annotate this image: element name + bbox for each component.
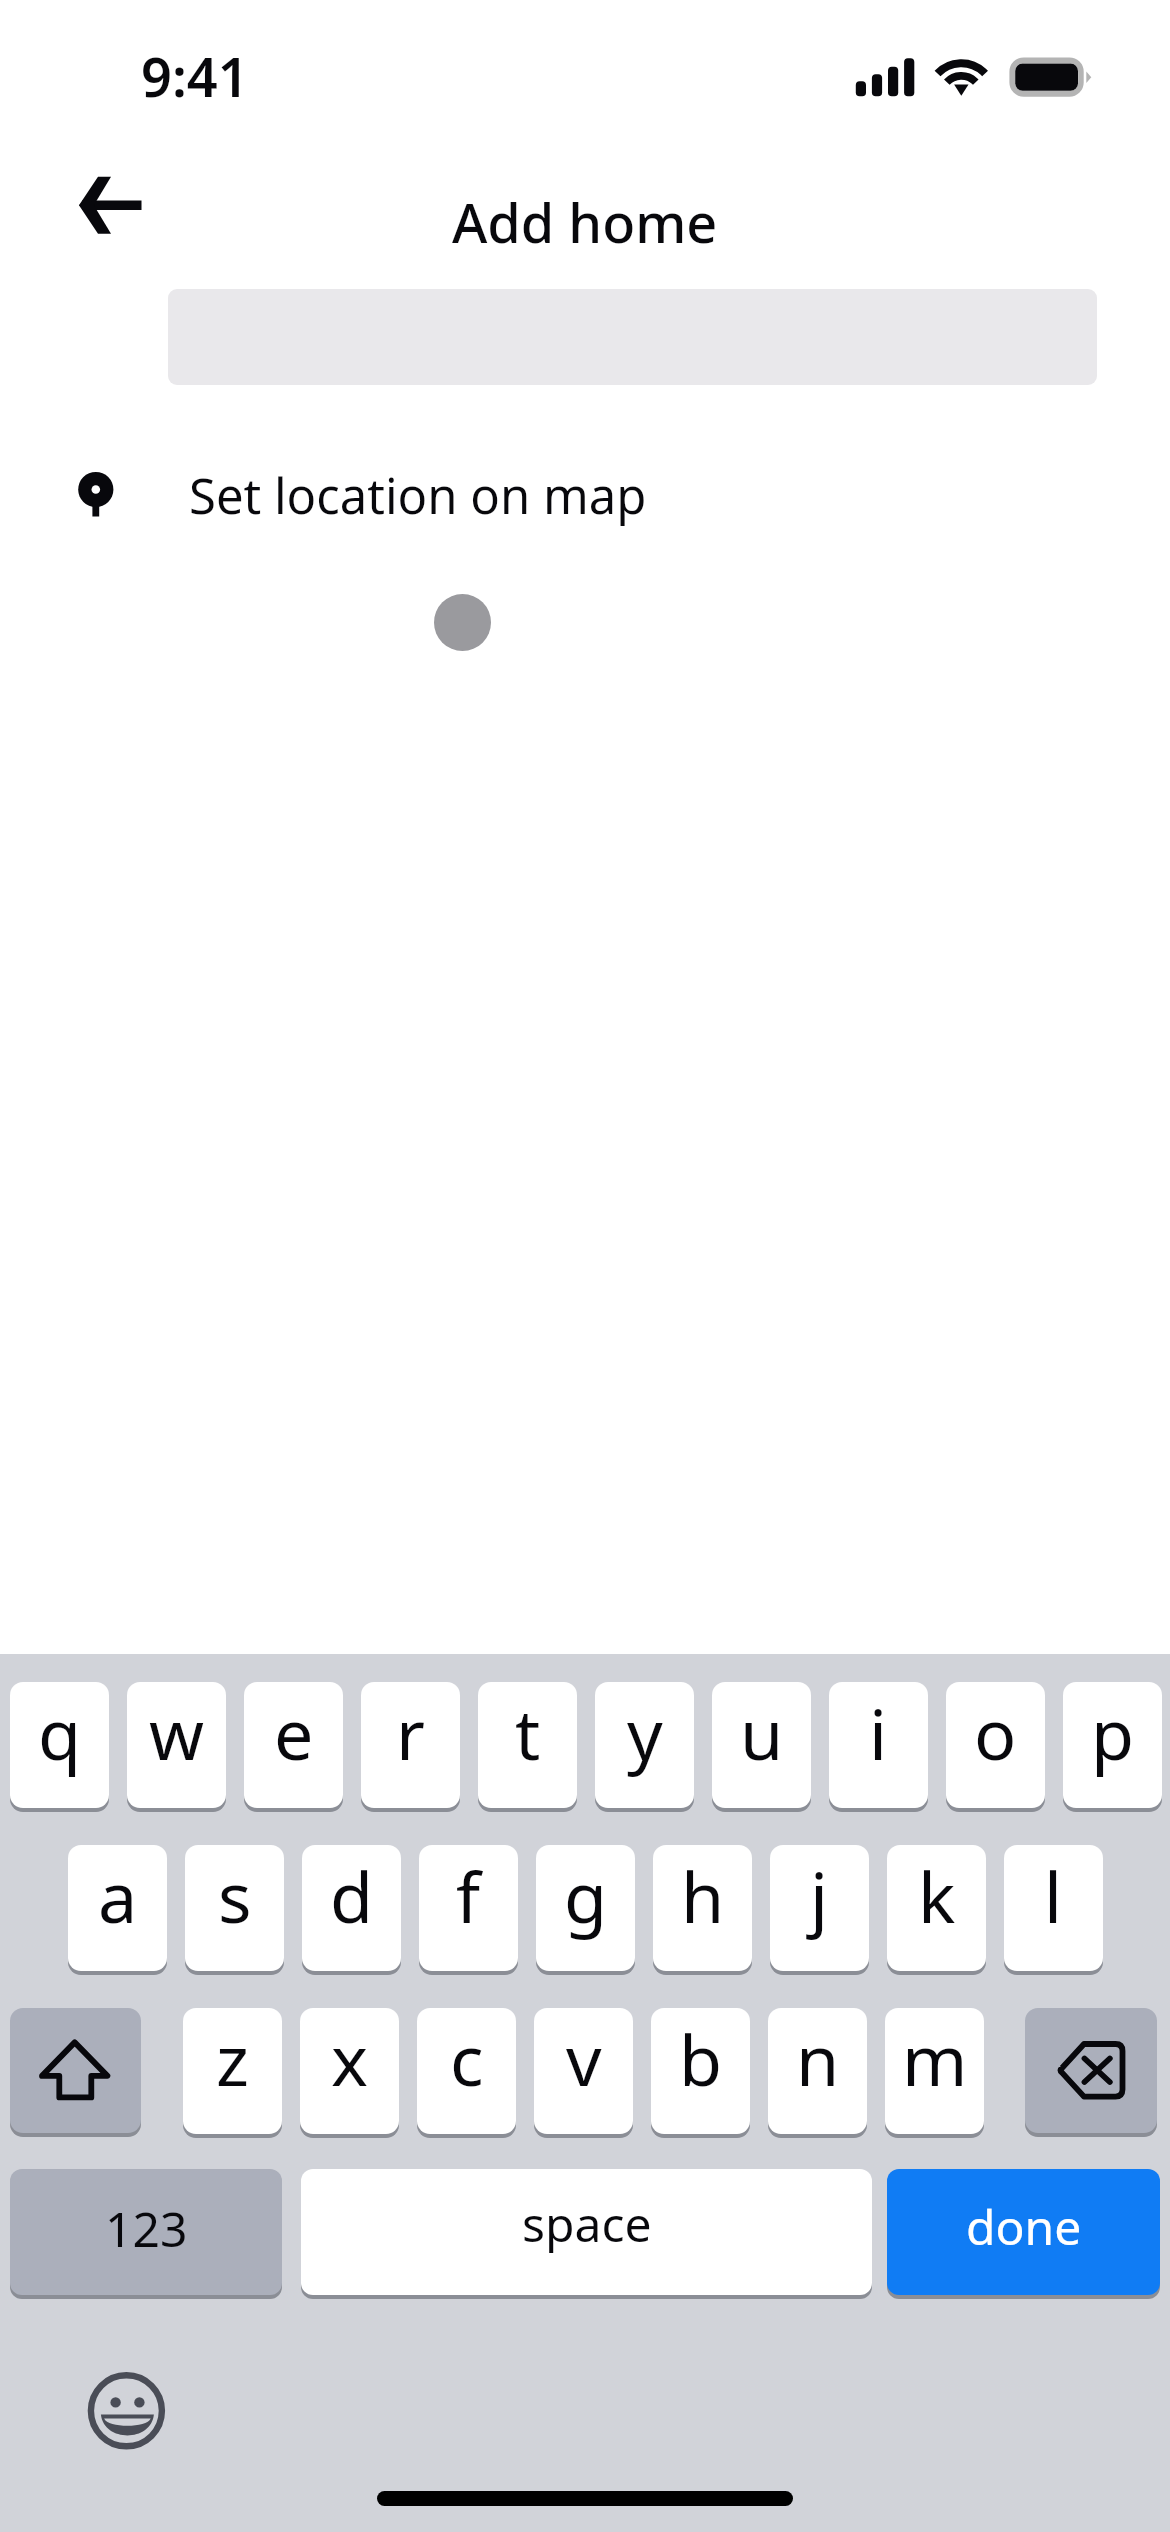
staticText: u — [740, 1685, 784, 1780]
staticText: Add home — [452, 185, 718, 259]
button[interactable]: h — [653, 1845, 752, 1971]
staticText: g — [564, 1848, 608, 1943]
staticText: y — [627, 1685, 663, 1780]
button[interactable]: a — [68, 1845, 167, 1971]
staticText: Set location on map — [189, 462, 647, 529]
staticText: space — [522, 2191, 652, 2256]
button[interactable]: k — [887, 1845, 986, 1971]
staticText: d — [330, 1848, 374, 1943]
staticText: z — [216, 2011, 249, 2106]
staticText: 9:41 — [141, 39, 249, 113]
button[interactable]: t — [478, 1682, 577, 1808]
staticText: c — [450, 2011, 484, 2106]
button[interactable]: p — [1063, 1682, 1162, 1808]
staticText: q — [38, 1685, 82, 1780]
button[interactable]: y — [595, 1682, 694, 1808]
button[interactable]: u — [712, 1682, 811, 1808]
staticText: m — [902, 2011, 968, 2106]
button[interactable]: l — [1004, 1845, 1103, 1971]
staticText: k — [918, 1848, 956, 1943]
button[interactable]: r — [361, 1682, 460, 1808]
button[interactable]: q — [10, 1682, 109, 1808]
button[interactable]: z — [183, 2008, 282, 2134]
button[interactable]: g — [536, 1845, 635, 1971]
staticText: x — [331, 2011, 369, 2106]
button[interactable]: Shift — [10, 2008, 141, 2133]
staticText: f — [456, 1848, 481, 1943]
button[interactable]: n — [768, 2008, 867, 2134]
button[interactable]: m — [885, 2008, 984, 2134]
staticText: e — [274, 1685, 314, 1780]
staticText: n — [796, 2011, 840, 2106]
staticText: v — [566, 2011, 602, 2106]
button[interactable]: Back — [50, 148, 168, 263]
staticText: h — [681, 1848, 725, 1943]
staticText: s — [218, 1848, 252, 1943]
staticText: w — [149, 1685, 205, 1780]
button[interactable]: c — [417, 2008, 516, 2134]
button[interactable]: e — [244, 1682, 343, 1808]
staticText: a — [98, 1848, 138, 1943]
button[interactable]: i — [829, 1682, 928, 1808]
button[interactable]: s — [185, 1845, 284, 1971]
button[interactable]: 123 — [10, 2169, 282, 2295]
staticText: p — [1091, 1685, 1135, 1780]
staticText: o — [974, 1685, 1017, 1780]
staticText: t — [515, 1685, 541, 1780]
button[interactable]: d — [302, 1845, 401, 1971]
staticText: i — [869, 1685, 888, 1780]
staticText: done — [966, 2194, 1082, 2259]
button[interactable]: Set location on map — [0, 437, 1170, 544]
staticText: l — [1044, 1848, 1063, 1943]
button[interactable]: o — [946, 1682, 1045, 1808]
button[interactable]: j — [770, 1845, 869, 1971]
button[interactable]: v — [534, 2008, 633, 2134]
button[interactable]: w — [127, 1682, 226, 1808]
button[interactable]: b — [651, 2008, 750, 2134]
staticText: r — [396, 1685, 425, 1780]
staticText: b — [679, 2011, 723, 2106]
button[interactable]: x — [300, 2008, 399, 2134]
staticText: 123 — [105, 2196, 188, 2261]
button[interactable]: Backspace — [1025, 2008, 1157, 2133]
button[interactable]: space — [301, 2169, 872, 2295]
button[interactable]: done — [887, 2169, 1160, 2295]
button[interactable]: Emoji keyboard — [87, 2371, 167, 2451]
staticText: j — [810, 1848, 829, 1943]
button[interactable]: f — [419, 1845, 518, 1971]
